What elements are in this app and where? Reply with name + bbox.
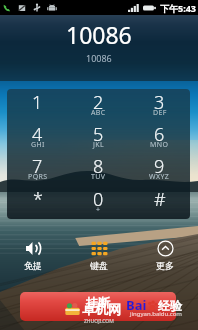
button[interactable]: * (7, 186, 68, 219)
staticText: 8 (93, 154, 104, 179)
button[interactable]: 3 (129, 89, 190, 121)
staticText: 下午5:43 (160, 2, 196, 14)
staticText: 2 (93, 90, 104, 115)
button[interactable]: 5 (68, 121, 129, 153)
button[interactable]: 键盘 (66, 240, 132, 271)
staticText: 1 (32, 90, 43, 115)
button[interactable]: 更多 (132, 240, 198, 271)
staticText: 键盘 (90, 260, 108, 271)
staticText: jingyan.baidu.com (130, 310, 182, 318)
staticText: PQRS (28, 172, 48, 182)
staticText: 卓机网 (82, 301, 121, 317)
staticText: WXYZ (149, 172, 170, 182)
button[interactable]: 0 (68, 186, 129, 219)
staticText: # (154, 187, 166, 212)
staticText: 10086 (86, 52, 112, 64)
button[interactable]: 4 (7, 121, 68, 153)
staticText: TUV (91, 172, 106, 182)
staticText: 6 (154, 122, 165, 147)
staticText: 挂断 (86, 295, 110, 310)
staticText: 免提 (24, 260, 42, 271)
button[interactable]: # (129, 186, 190, 219)
button[interactable]: 6 (129, 121, 190, 153)
button[interactable]: 1 (7, 89, 68, 121)
button[interactable]: 2 (68, 89, 129, 121)
staticText: 经验 (158, 298, 182, 313)
staticText: 4 (32, 122, 43, 147)
staticText: ZHUOJI.COM (84, 318, 114, 325)
staticText: JKL (93, 140, 105, 150)
staticText: 更多 (156, 260, 174, 271)
staticText: 3 (154, 90, 165, 115)
staticText: 10086 (66, 19, 132, 50)
staticText: DEF (153, 108, 167, 118)
button[interactable]: 8 (68, 153, 129, 186)
button[interactable]: 挂断 (20, 292, 176, 321)
staticText: * (33, 187, 43, 212)
staticText: Bai (126, 296, 147, 314)
button[interactable]: 7 (7, 153, 68, 186)
button[interactable]: 免提 (0, 240, 66, 271)
staticText: 7 (32, 154, 43, 179)
staticText: MNO (150, 140, 169, 150)
staticText: ABC (91, 108, 106, 118)
staticText: 5 (93, 122, 104, 147)
staticText: GHI (31, 140, 45, 150)
staticText: 0 (93, 187, 104, 212)
staticText: 9 (154, 154, 165, 179)
button[interactable]: 9 (129, 153, 190, 186)
staticText: + (96, 205, 101, 215)
